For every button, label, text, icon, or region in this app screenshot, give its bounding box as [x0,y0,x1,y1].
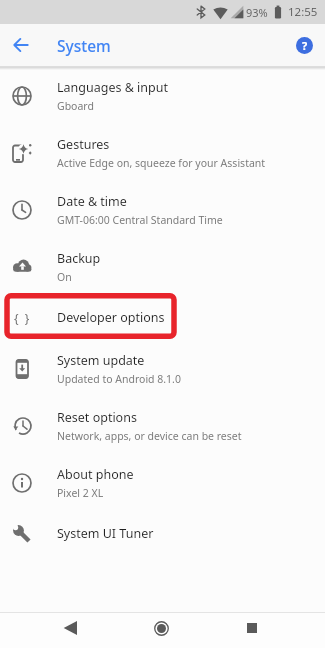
staticText: Pixel 2 XL [57,486,104,500]
button[interactable]: About phone [0,454,325,511]
staticText: GMT-06:00 Central Standard Time [57,213,223,227]
staticText: 12:55 [288,4,318,20]
button[interactable]: Languages & input [0,67,325,124]
staticText: System update [57,352,145,369]
staticText: Gboard [57,99,94,113]
button[interactable] [0,24,42,66]
staticText: Languages & input [57,79,168,96]
button[interactable] [147,614,175,642]
staticText: On [57,270,72,284]
button[interactable]: Backup [0,238,325,295]
staticText: System [57,35,111,56]
staticText: Backup [57,250,101,267]
button[interactable]: System update [0,340,325,397]
staticText: Date & time [57,193,127,210]
staticText: 93% [246,5,268,20]
staticText: ? [302,38,308,53]
staticText: About phone [57,466,134,483]
button[interactable] [56,614,84,642]
button[interactable]: Gestures [0,124,325,181]
staticText: Gestures [57,136,110,153]
button[interactable] [238,614,266,642]
button[interactable]: ? [296,37,313,54]
staticText: Network, apps, or device can be reset [57,429,242,443]
staticText: Developer options [57,309,165,326]
button[interactable]: System UI Tuner [0,511,325,556]
staticText: Updated to Android 8.1.0 [57,372,181,386]
button[interactable]: Reset options [0,397,325,454]
staticText: System UI Tuner [57,525,154,542]
button[interactable]: Date & time [0,181,325,238]
staticText: Active Edge on, squeeze for your Assista… [57,156,266,170]
button[interactable]: { } [0,295,325,340]
staticText: Reset options [57,409,137,426]
staticText: { } [14,310,31,326]
